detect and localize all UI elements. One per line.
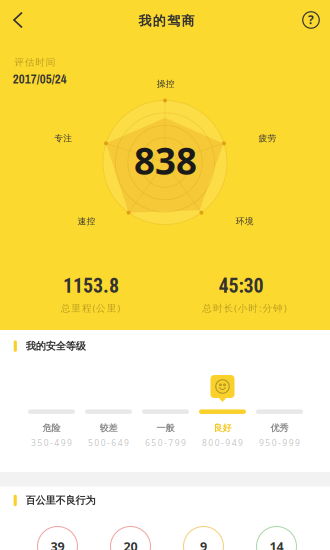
staticText: 疲劳 — [258, 133, 276, 144]
button[interactable]: 返回 — [2, 1, 34, 38]
staticText: 39 — [50, 538, 64, 550]
staticText: 800-949 — [202, 437, 243, 448]
staticText: 838 — [134, 135, 197, 185]
staticText: 总时长(小时:分钟) — [202, 301, 287, 315]
staticText: 9 — [200, 538, 207, 550]
staticText: 我的驾商 — [138, 13, 194, 29]
staticText: 我的安全等级 — [26, 340, 86, 352]
staticText: 650-799 — [145, 437, 186, 448]
staticText: 专注 — [54, 133, 72, 144]
button[interactable]: 帮助 — [296, 5, 326, 35]
staticText: 评估时间 — [14, 56, 56, 68]
staticText: 350-499 — [31, 437, 72, 448]
staticText: 一般 — [156, 422, 174, 434]
staticText: 950-999 — [259, 437, 300, 448]
staticText: 较差 — [99, 422, 117, 434]
staticText: 百公里不良行为 — [26, 494, 96, 507]
staticText: 操控 — [157, 78, 175, 89]
staticText: 1153.8 — [63, 274, 119, 298]
staticText: 总里程(公里) — [61, 301, 120, 315]
staticText: 危险 — [42, 422, 60, 434]
staticText: 20 — [123, 538, 137, 550]
staticText: 优秀 — [270, 422, 288, 434]
staticText: 良好 — [213, 422, 231, 434]
staticText: 45:30 — [218, 274, 263, 298]
staticText: 环境 — [236, 216, 254, 227]
staticText: 500-649 — [88, 437, 129, 448]
staticText: 2017/05/24 — [13, 70, 67, 87]
staticText: ? — [308, 11, 314, 28]
staticText: 速控 — [77, 216, 95, 227]
staticText: 14 — [269, 538, 283, 550]
